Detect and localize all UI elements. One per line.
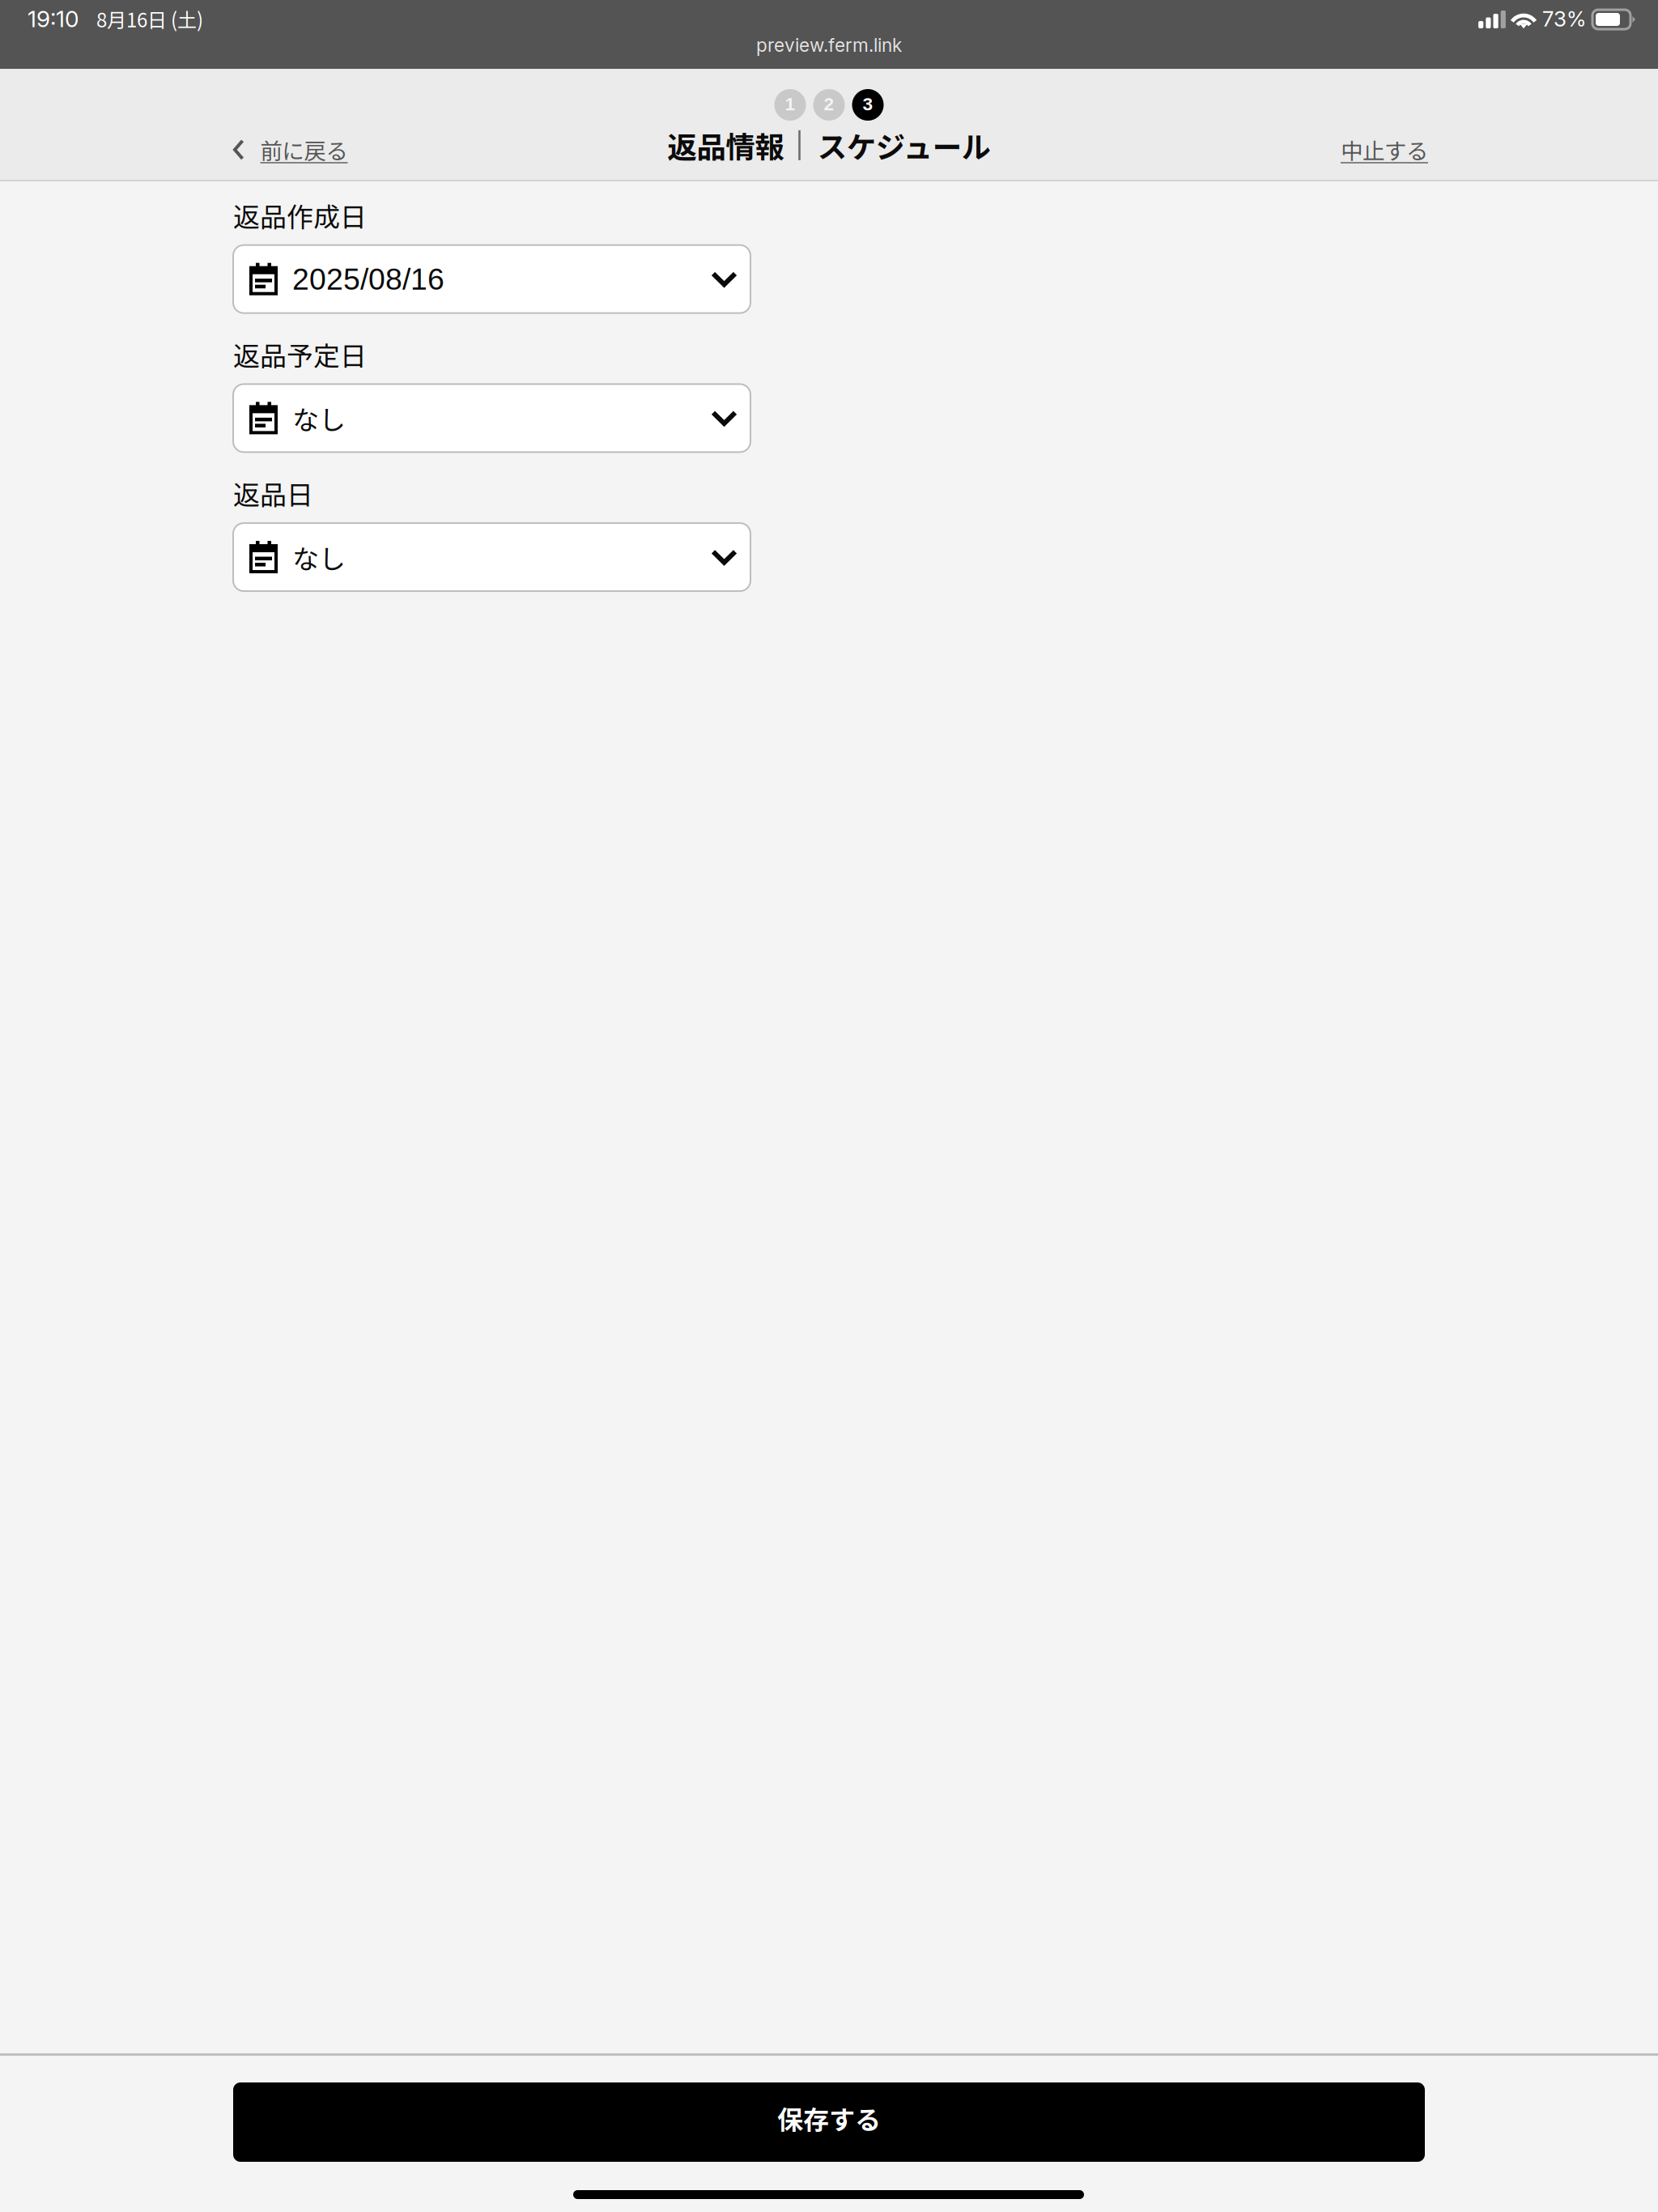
staticText: なし <box>292 538 346 576</box>
button[interactable]: なし <box>233 523 750 591</box>
staticText: 返品情報 <box>667 124 784 167</box>
staticText: 19:10 <box>28 5 79 33</box>
button[interactable]: 2025/08/16 <box>233 245 750 313</box>
button[interactable]: 中止する <box>1337 122 1431 177</box>
staticText: 3 <box>863 94 873 114</box>
staticText: 返品予定日 <box>233 335 367 374</box>
staticText: 2025/08/16 <box>292 262 444 296</box>
staticText: 2 <box>824 94 834 114</box>
button[interactable]: 前に戻る <box>230 122 351 177</box>
staticText: なし <box>292 399 346 437</box>
staticText: 返品作成日 <box>233 196 367 235</box>
staticText: 8月16日 (土) <box>96 5 203 33</box>
staticText: 保存する <box>777 2099 881 2137</box>
button[interactable]: なし <box>233 384 750 452</box>
button[interactable]: 保存する <box>233 2082 1425 2162</box>
staticText: 73% <box>1542 6 1586 32</box>
staticText: スケジュール <box>818 124 991 167</box>
staticText: 中止する <box>1341 134 1428 166</box>
staticText: 1 <box>785 94 795 114</box>
staticText: 前に戻る <box>260 134 348 166</box>
staticText: preview.ferm.link <box>756 34 902 56</box>
staticText: 返品日 <box>233 474 313 513</box>
